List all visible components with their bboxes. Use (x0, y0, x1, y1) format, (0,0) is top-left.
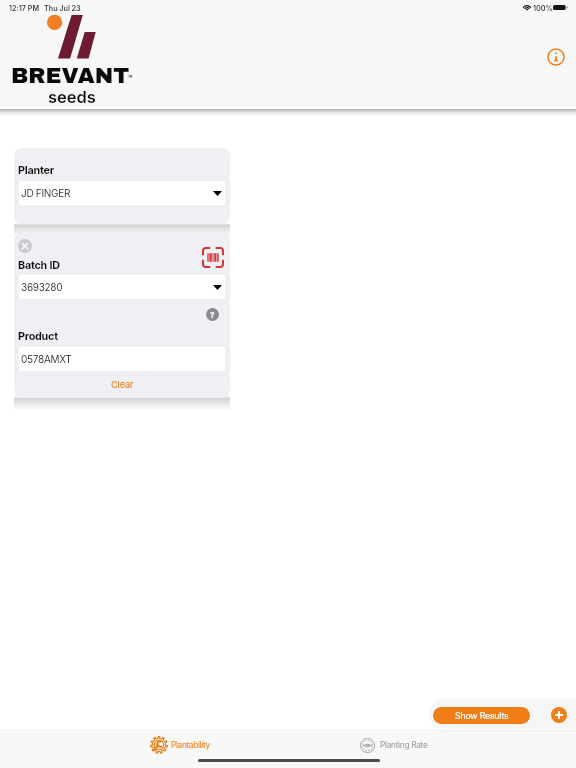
staticText: 100% (533, 4, 553, 13)
button[interactable]: Show Results (433, 707, 530, 724)
staticText: 0578AMXT (21, 353, 72, 365)
staticText: ™ (128, 74, 133, 82)
staticText: seeds (48, 87, 96, 107)
staticText: JD FINGER (21, 187, 71, 199)
staticText: Planter (18, 164, 54, 177)
button[interactable]: Help (206, 308, 219, 321)
staticText: Planting Rate (380, 740, 428, 750)
staticText: 3693280 (21, 281, 63, 293)
button[interactable]: Plantability (140, 734, 218, 756)
button[interactable]: Planting Rate (352, 734, 436, 756)
staticText: ? (210, 310, 215, 320)
button[interactable]: JD FINGER (19, 181, 225, 205)
staticText: Thu Jul 23 (44, 4, 81, 13)
staticText: Clear (111, 379, 134, 390)
staticText: Batch ID (18, 259, 60, 272)
button[interactable]: 3693280 (19, 275, 225, 299)
button[interactable]: Clear (14, 376, 230, 392)
staticText: Product (18, 330, 58, 343)
button[interactable]: Add (551, 707, 567, 723)
button[interactable]: Scan barcode (202, 247, 224, 268)
staticText: BREVANT (11, 64, 130, 88)
staticText: 12:17 PM (9, 4, 40, 13)
staticText: Show Results (455, 710, 509, 721)
staticText: Plantability (171, 740, 210, 750)
button[interactable]: Close (18, 239, 32, 253)
button[interactable]: Information (547, 48, 565, 66)
